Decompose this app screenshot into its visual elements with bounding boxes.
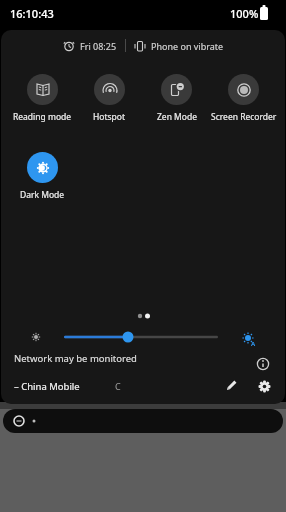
staticText: 100%: [230, 6, 259, 21]
button[interactable]: Dark Mode: [9, 152, 76, 201]
button[interactable]: Reading mode: [9, 74, 76, 123]
staticText: – China Mobile: [14, 380, 80, 393]
button[interactable]: [221, 376, 241, 396]
staticText: Network may be monitored: [14, 352, 137, 365]
button[interactable]: Hotspot: [76, 74, 143, 123]
button[interactable]: A: [1, 325, 285, 349]
staticText: Reading mode: [13, 111, 72, 123]
button[interactable]: Screen Recorder: [210, 74, 277, 123]
staticText: Fri 08:25: [80, 40, 117, 52]
staticText: Dark Mode: [20, 189, 65, 201]
button[interactable]: [3, 409, 283, 433]
staticText: Phone on vibrate: [151, 40, 224, 52]
staticText: Zen Mode: [157, 111, 197, 123]
staticText: Hotspot: [93, 111, 126, 123]
button[interactable]: Network may be monitored: [1, 350, 285, 372]
staticText: C: [115, 380, 121, 392]
staticText: 16:10:43: [10, 6, 54, 21]
button[interactable]: [254, 376, 274, 396]
button[interactable]: Fri 08:25: [63, 39, 224, 52]
staticText: A: [251, 340, 256, 348]
staticText: Screen Recorder: [211, 111, 277, 123]
button[interactable]: Zen Mode: [143, 74, 210, 123]
